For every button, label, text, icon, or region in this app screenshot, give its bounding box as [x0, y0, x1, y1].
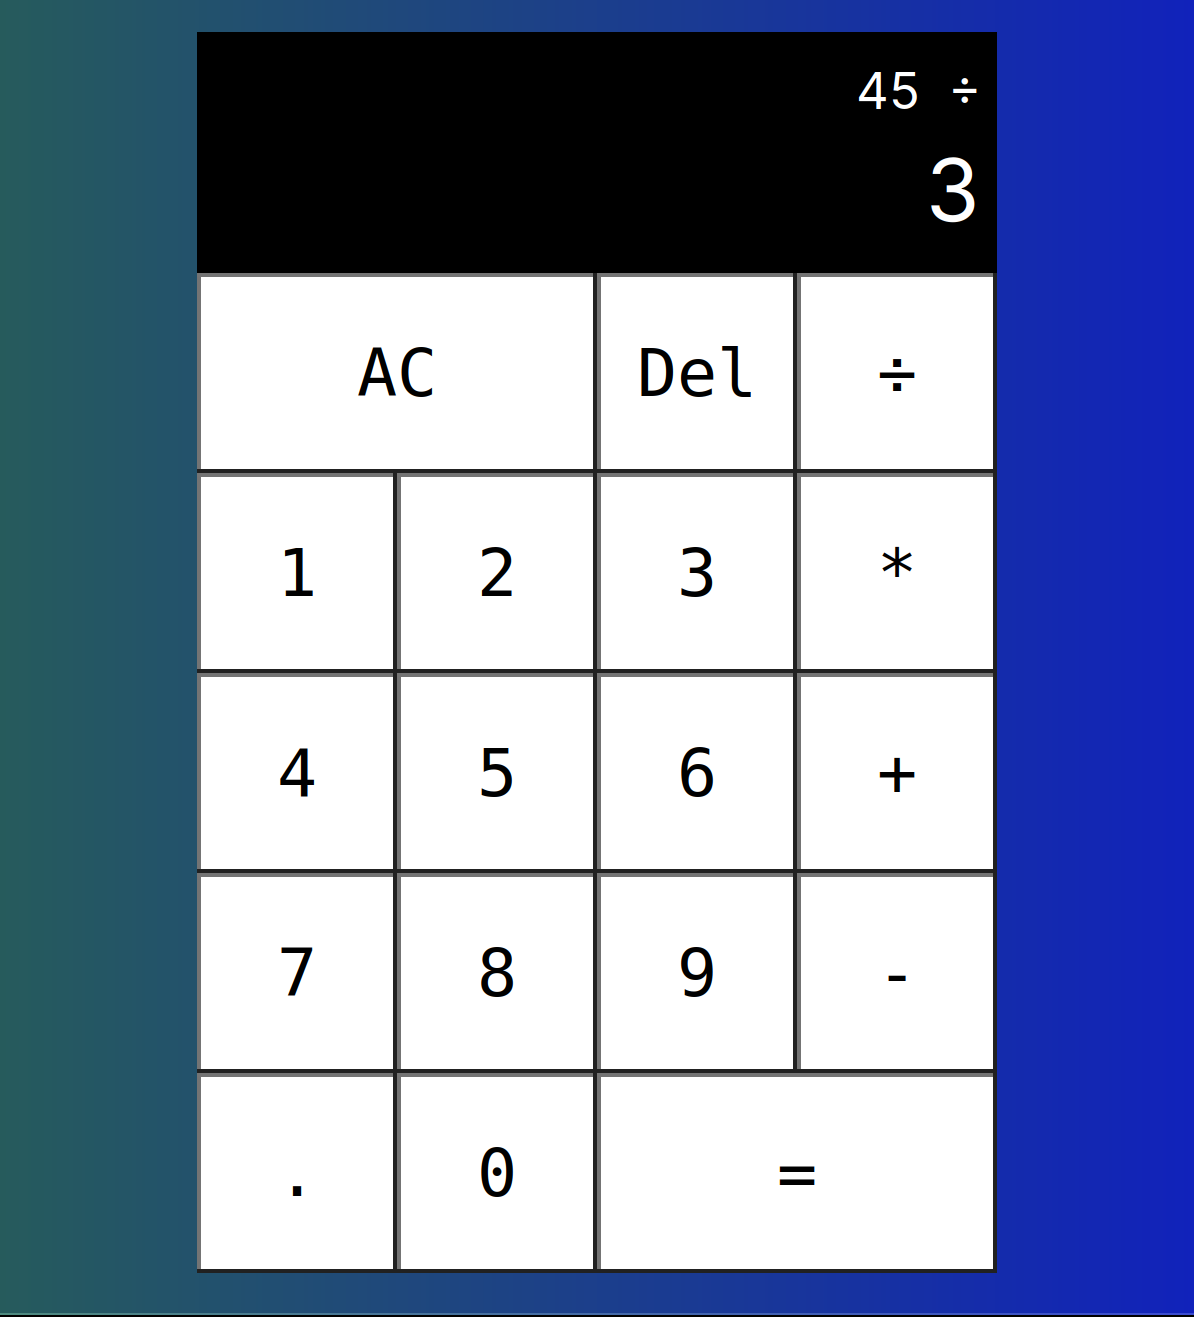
button[interactable]: 8 [397, 873, 597, 1073]
button[interactable]: Decimal point [197, 1073, 397, 1273]
staticText: 4 [277, 734, 317, 812]
button[interactable]: 6 [597, 673, 797, 873]
staticText: 6 [677, 734, 717, 812]
staticText: = [777, 1134, 817, 1212]
staticText: 9 [677, 934, 717, 1012]
button[interactable]: All clear [197, 273, 597, 473]
button[interactable]: 4 [197, 673, 397, 873]
staticText: 2 [477, 534, 517, 612]
staticText: 5 [477, 734, 517, 812]
button[interactable]: 1 [197, 473, 397, 673]
staticText: 3 [677, 534, 717, 612]
staticText: . [277, 1134, 317, 1212]
button[interactable]: Plus [797, 673, 997, 873]
button[interactable]: Multiply [797, 473, 997, 673]
staticText: * [877, 534, 917, 612]
staticText: 0 [477, 1134, 517, 1212]
staticText: - [877, 934, 917, 1012]
staticText: 1 [277, 534, 317, 612]
button[interactable]: 0 [397, 1073, 597, 1273]
staticText: 3 [926, 137, 980, 242]
staticText: + [877, 734, 917, 812]
button[interactable]: 3 [597, 473, 797, 673]
button[interactable]: Delete [597, 273, 797, 473]
button[interactable]: Divide [797, 273, 997, 473]
button[interactable]: 2 [397, 473, 597, 673]
button[interactable]: 5 [397, 673, 597, 873]
staticText: ÷ [877, 334, 917, 412]
staticText: Del [637, 334, 757, 412]
staticText: AC [357, 334, 437, 412]
button[interactable]: 7 [197, 873, 397, 1073]
staticText: 8 [477, 934, 517, 1012]
staticText: 45 ÷ [856, 60, 982, 121]
button[interactable]: Minus [797, 873, 997, 1073]
staticText: 7 [277, 934, 317, 1012]
button[interactable]: Equals [597, 1073, 997, 1273]
button[interactable]: 9 [597, 873, 797, 1073]
